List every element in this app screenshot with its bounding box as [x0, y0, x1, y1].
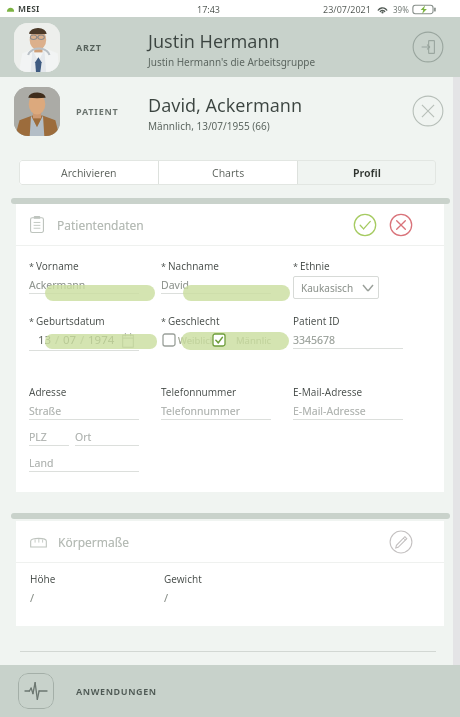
- staticText: Archivieren: [61, 166, 117, 180]
- staticText: /: [164, 590, 169, 605]
- button[interactable]: Abmelden: [410, 29, 446, 65]
- staticText: *: [29, 260, 34, 272]
- button[interactable]: Abbrechen: [389, 213, 413, 237]
- button[interactable]: Archivieren: [19, 160, 158, 185]
- staticText: Nachname: [168, 259, 219, 273]
- staticText: Justin Hermann: [148, 29, 280, 54]
- staticText: 23/07/2021: [323, 3, 371, 15]
- staticText: Telefonnummer: [161, 404, 240, 418]
- staticText: Profil: [353, 166, 381, 180]
- staticText: 39%: [393, 4, 409, 15]
- button[interactable]: Speichern: [353, 213, 377, 237]
- staticText: 17:43: [197, 3, 221, 15]
- staticText: Adresse: [29, 385, 67, 399]
- staticText: Straße: [29, 404, 62, 418]
- staticText: 07: [63, 332, 77, 348]
- staticText: E-Mail-Adresse: [293, 404, 366, 418]
- staticText: Land: [29, 456, 54, 470]
- staticText: Patientendaten: [57, 217, 144, 233]
- staticText: E-Mail-Adresse: [293, 385, 363, 399]
- staticText: Weiblich: [178, 334, 216, 347]
- button[interactable]: Profil: [298, 160, 436, 185]
- staticText: /: [77, 332, 88, 348]
- staticText: David, Ackermann: [148, 93, 303, 118]
- staticText: 1974: [88, 332, 115, 348]
- staticText: ANWENDUNGEN: [76, 685, 157, 697]
- button[interactable]: Kaukasisch: [301, 276, 373, 299]
- staticText: *: [29, 315, 34, 327]
- staticText: ARZT: [76, 41, 102, 53]
- staticText: Körpermaße: [58, 534, 130, 550]
- staticText: PLZ: [29, 430, 47, 444]
- staticText: Justin Hermann's die Arbeitsgruppe: [148, 55, 316, 69]
- staticText: 3345678: [293, 333, 336, 347]
- staticText: Kaukasisch: [301, 281, 354, 295]
- staticText: Telefonnummer: [161, 385, 237, 399]
- button[interactable]: Anwendungen: [18, 673, 54, 709]
- staticText: Gewicht: [164, 572, 202, 586]
- staticText: MESI: [18, 3, 40, 15]
- staticText: Höhe: [30, 572, 56, 586]
- staticText: Ackermann: [29, 278, 86, 292]
- staticText: Männlich: [236, 334, 271, 347]
- staticText: Ort: [75, 430, 92, 444]
- button[interactable]: Patient schließen: [410, 93, 446, 129]
- button[interactable]: Bearbeiten: [389, 530, 413, 554]
- staticText: Männlich, 13/07/1955 (66): [148, 119, 270, 133]
- staticText: Vorname: [36, 259, 79, 273]
- staticText: Geburtsdatum: [36, 314, 105, 328]
- button[interactable]: Charts: [159, 160, 297, 185]
- staticText: *: [293, 260, 298, 272]
- staticText: Charts: [212, 166, 245, 180]
- staticText: /: [30, 590, 35, 605]
- staticText: *: [161, 260, 166, 272]
- staticText: Geschlecht: [168, 314, 220, 328]
- staticText: David: [161, 278, 190, 292]
- staticText: 13: [38, 332, 52, 348]
- staticText: Patient ID: [293, 314, 340, 328]
- staticText: *: [161, 315, 166, 327]
- staticText: /: [52, 332, 63, 348]
- staticText: PATIENT: [76, 105, 119, 117]
- staticText: Ethnie: [300, 259, 330, 273]
